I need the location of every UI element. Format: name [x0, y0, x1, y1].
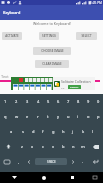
staticText: 1:25 PM	[90, 1, 102, 5]
staticText: Text	[1, 74, 9, 79]
button[interactable]: 4	[33, 94, 43, 109]
staticText: h	[62, 129, 65, 134]
staticText: ,	[18, 159, 20, 164]
staticText: CHOOSE IMAGE	[41, 49, 64, 53]
staticText: 1	[4, 99, 7, 104]
button[interactable]: SPACE	[35, 158, 67, 165]
staticText: 4.5	[61, 86, 65, 89]
button[interactable]: p	[93, 109, 103, 124]
button[interactable]: CHOOSE IMAGE	[33, 47, 71, 55]
button[interactable]: Switch keyboard	[87, 172, 103, 183]
staticText: ACTIVATE	[5, 34, 19, 38]
staticText: 0	[97, 99, 100, 104]
button[interactable]: 7	[63, 94, 73, 109]
button[interactable]: Symbols	[0, 154, 14, 169]
button[interactable]: c	[38, 139, 48, 154]
button[interactable]: k	[78, 124, 88, 139]
staticText: 5	[47, 99, 50, 104]
button[interactable]: b	[58, 139, 68, 154]
button[interactable]: 2	[11, 94, 22, 109]
button[interactable]: e	[22, 109, 33, 124]
button[interactable]: Home	[29, 172, 58, 183]
staticText: p	[97, 114, 100, 119]
button[interactable]: h	[58, 124, 68, 139]
button[interactable]: 5	[43, 94, 53, 109]
button[interactable]: s	[17, 124, 28, 139]
button[interactable]: Next	[68, 154, 78, 169]
button[interactable]: .	[78, 154, 88, 169]
button[interactable]: v	[48, 139, 58, 154]
button[interactable]: n	[68, 139, 78, 154]
button[interactable]: u	[63, 109, 73, 124]
staticText: q	[4, 114, 7, 119]
staticText: t	[47, 114, 49, 119]
button[interactable]: w	[11, 109, 22, 124]
staticText: k	[82, 129, 85, 134]
button[interactable]: m	[78, 139, 88, 154]
staticText: v	[52, 144, 55, 149]
staticText: y	[57, 114, 60, 119]
staticText: m	[81, 144, 85, 149]
staticText: SELECT	[81, 34, 92, 38]
button[interactable]: ,	[14, 154, 24, 169]
button[interactable]: SETTINGS	[39, 32, 59, 40]
staticText: a	[10, 129, 13, 134]
staticText: s	[22, 129, 24, 134]
button[interactable]: x	[27, 139, 38, 154]
staticText: i	[77, 114, 79, 119]
button[interactable]: ACTIVATE	[2, 32, 22, 40]
staticText: f	[42, 129, 44, 134]
button[interactable]: d	[28, 124, 38, 139]
button[interactable]: a	[6, 124, 17, 139]
staticText: r	[37, 114, 39, 119]
staticText: u	[67, 114, 70, 119]
staticText: d	[32, 129, 35, 134]
staticText: j	[72, 129, 74, 134]
button[interactable]: INSTALL	[68, 85, 81, 89]
staticText: Keyboard	[3, 10, 21, 15]
staticText: o	[87, 114, 90, 119]
staticText: 3	[26, 99, 29, 104]
button[interactable]: i	[73, 109, 83, 124]
staticText: g	[52, 129, 55, 134]
staticText: 7	[67, 99, 70, 104]
button[interactable]: t	[43, 109, 53, 124]
button[interactable]: 3	[22, 94, 33, 109]
button[interactable]: Previous	[24, 154, 34, 169]
staticText: Solitaire Collection	[61, 79, 91, 84]
button[interactable]: Hide keyboard	[0, 172, 29, 183]
button[interactable]: Backspace	[88, 139, 103, 154]
staticText: l	[92, 129, 94, 134]
button[interactable]: y	[53, 109, 63, 124]
button[interactable]: Text	[0, 74, 103, 84]
staticText: 4	[37, 99, 40, 104]
button[interactable]: Shift	[0, 139, 16, 154]
staticText: 9	[87, 99, 90, 104]
staticText: 6	[57, 99, 60, 104]
button[interactable]: 0	[93, 94, 103, 109]
button[interactable]: o	[83, 109, 93, 124]
button[interactable]: Solitaire Collection	[11, 77, 95, 90]
button[interactable]: g	[48, 124, 58, 139]
button[interactable]: CLEAR IMAGE	[35, 60, 69, 68]
button[interactable]: 1	[0, 94, 11, 109]
button[interactable]: z	[16, 139, 27, 154]
staticText: 8	[77, 99, 80, 104]
staticText: z	[21, 144, 23, 149]
staticText: .	[82, 159, 84, 164]
button[interactable]: l	[88, 124, 98, 139]
staticText: 2	[15, 99, 18, 104]
button[interactable]: 9	[83, 94, 93, 109]
staticText: SETTINGS	[42, 34, 56, 38]
button[interactable]: 8	[73, 94, 83, 109]
staticText: CLEAR IMAGE	[42, 62, 62, 66]
button[interactable]: r	[33, 109, 43, 124]
button[interactable]: SELECT	[76, 32, 97, 40]
button[interactable]: f	[38, 124, 48, 139]
button[interactable]: Recents	[58, 172, 87, 183]
button[interactable]: j	[68, 124, 78, 139]
staticText: w	[15, 114, 19, 119]
button[interactable]: 6	[53, 94, 63, 109]
button[interactable]: Enter	[88, 154, 103, 169]
button[interactable]: q	[0, 109, 11, 124]
